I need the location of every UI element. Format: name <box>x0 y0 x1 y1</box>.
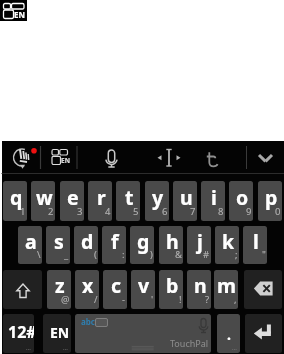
staticText: j <box>197 228 203 255</box>
button[interactable]: t <box>116 181 140 221</box>
staticText: 5 <box>133 205 139 218</box>
staticText: d <box>81 228 94 255</box>
button[interactable]: 12# <box>3 314 34 353</box>
staticText: e <box>67 184 79 211</box>
button[interactable]: u <box>173 181 197 221</box>
button[interactable] <box>146 141 190 173</box>
button[interactable] <box>196 141 240 173</box>
staticText: r <box>97 184 106 211</box>
staticText: n <box>194 272 207 299</box>
staticText: - <box>122 293 126 306</box>
button[interactable]: h <box>159 226 183 264</box>
button[interactable]: EN <box>0 0 27 21</box>
button[interactable]: s <box>46 226 70 264</box>
button[interactable] <box>90 141 134 173</box>
button[interactable]: abc <box>75 314 211 353</box>
staticText: / <box>94 293 98 306</box>
button[interactable] <box>0 141 40 173</box>
staticText: 2 <box>48 205 54 218</box>
staticText: ... <box>26 344 31 352</box>
staticText: EN <box>14 9 25 20</box>
staticText: u <box>180 184 193 211</box>
button[interactable]: b <box>159 270 183 309</box>
staticText: z <box>55 272 65 299</box>
staticText: _ <box>64 248 69 261</box>
staticText: 7 <box>190 205 196 218</box>
staticText: & <box>175 248 182 261</box>
staticText: ? <box>205 293 210 306</box>
button[interactable]: n <box>187 270 211 309</box>
staticText: EN <box>61 156 70 165</box>
staticText: ; <box>235 248 238 261</box>
staticText: @ <box>61 293 70 306</box>
staticText: g <box>137 228 150 255</box>
button[interactable]: p <box>258 181 282 221</box>
button[interactable]: f <box>102 226 126 264</box>
button[interactable]: o <box>229 181 253 221</box>
button[interactable]: v <box>131 270 155 309</box>
staticText: 9 <box>246 205 252 218</box>
button[interactable] <box>3 270 42 309</box>
button[interactable] <box>41 141 77 173</box>
button[interactable]: g <box>130 226 154 264</box>
staticText: i <box>211 184 217 211</box>
button[interactable]: d <box>74 226 98 264</box>
button[interactable] <box>244 270 282 309</box>
staticText: y <box>152 184 164 211</box>
staticText: w <box>36 184 53 211</box>
button[interactable]: y <box>145 181 169 221</box>
staticText: p <box>265 184 278 211</box>
staticText: h <box>166 228 179 255</box>
button[interactable]: l <box>243 226 267 264</box>
staticText: m <box>217 272 237 299</box>
button[interactable]: i <box>201 181 225 221</box>
staticText: a <box>25 228 37 255</box>
button[interactable]: k <box>215 226 239 264</box>
staticText: 3 <box>77 205 83 218</box>
staticText: 6 <box>162 205 168 218</box>
staticText: t <box>125 184 134 211</box>
staticText: b <box>166 272 179 299</box>
staticText: v <box>138 272 150 299</box>
staticText: f <box>111 228 119 255</box>
staticText: ) <box>150 248 153 261</box>
staticText: x <box>82 272 94 299</box>
staticText: . <box>227 325 231 344</box>
staticText: c <box>111 272 122 299</box>
button[interactable]: EN <box>43 314 71 353</box>
staticText: TouchPal <box>170 337 209 349</box>
staticText: ... <box>232 344 237 352</box>
button[interactable]: z <box>47 270 71 309</box>
button[interactable]: r <box>88 181 112 221</box>
staticText: s <box>54 228 64 255</box>
button[interactable]: e <box>60 181 84 221</box>
button[interactable] <box>245 314 282 353</box>
staticText: ... <box>63 344 68 352</box>
button[interactable]: . <box>217 314 240 353</box>
button[interactable]: q <box>3 181 27 221</box>
staticText: 8 <box>218 205 224 218</box>
staticText: 0 <box>275 205 281 218</box>
staticText: q <box>10 184 23 211</box>
staticText: o <box>236 184 249 211</box>
button[interactable] <box>247 141 284 173</box>
button[interactable]: c <box>103 270 127 309</box>
button[interactable]: a <box>18 226 42 264</box>
staticText: , <box>234 293 237 306</box>
button[interactable]: w <box>31 181 55 221</box>
staticText: ( <box>94 248 97 261</box>
button[interactable]: m <box>214 270 238 309</box>
staticText: # <box>203 248 210 261</box>
staticText: k <box>222 228 235 255</box>
button[interactable]: x <box>75 270 99 309</box>
staticText: abc <box>81 316 95 327</box>
staticText: 4 <box>105 205 111 218</box>
staticText: 12# <box>8 321 34 343</box>
staticText: ! <box>179 293 182 306</box>
button[interactable]: j <box>187 226 211 264</box>
staticText: \ <box>37 248 41 261</box>
staticText: l <box>253 228 259 255</box>
staticText: 1 <box>20 205 26 218</box>
staticText: ' <box>151 293 154 306</box>
staticText: : <box>122 248 125 261</box>
